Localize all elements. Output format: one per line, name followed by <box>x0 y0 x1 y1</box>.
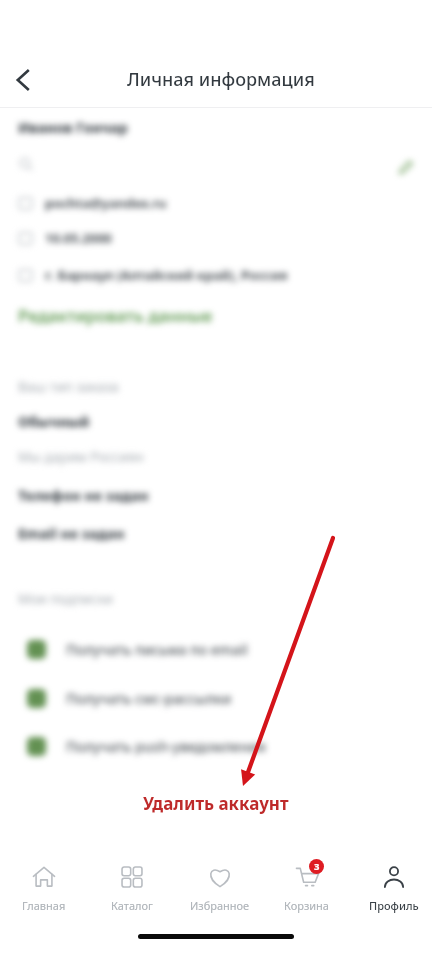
staticText: pochta@yandex.ru <box>45 194 167 212</box>
staticText: 3 <box>314 860 320 873</box>
staticText: Профиль <box>369 898 419 913</box>
staticText: Мои подписки <box>18 590 114 608</box>
staticText: Получать смс-рассылки <box>66 689 232 708</box>
staticText: Получать push-уведомления <box>66 737 266 756</box>
staticText: Обычный <box>18 412 90 431</box>
staticText: Редактировать данные <box>18 304 213 327</box>
staticText: Избранное <box>190 898 250 913</box>
staticText: Получать письма по email <box>66 640 248 659</box>
staticText: Иванов Гончар <box>18 118 128 137</box>
staticText: Главная <box>22 898 66 913</box>
staticText: Корзина <box>284 898 329 913</box>
staticText: Каталог <box>111 898 153 913</box>
button[interactable]: Back <box>4 60 44 100</box>
button[interactable]: Получать письма по email <box>27 640 248 659</box>
staticText: г. Барнаул (Алтайский край), Россия <box>45 266 288 284</box>
button[interactable]: Каталог <box>88 865 176 913</box>
staticText: Email не задан <box>18 524 125 543</box>
staticText: Ваш тип заказа <box>18 378 119 396</box>
button[interactable]: 3 <box>263 865 350 913</box>
staticText: 10.05.2000 <box>45 229 112 247</box>
button[interactable]: Избранное <box>176 865 263 913</box>
staticText: Личная информация <box>127 67 315 92</box>
button[interactable]: Главная <box>0 865 88 913</box>
staticText: Телефон не задан <box>18 486 149 505</box>
button[interactable]: Получать смс-рассылки <box>27 689 232 708</box>
button[interactable]: Профиль <box>350 865 432 913</box>
staticText: Удалить аккаунт <box>143 792 289 815</box>
button[interactable]: Удалить аккаунт <box>133 789 299 818</box>
staticText: Мы дарим Россиян <box>18 448 144 466</box>
button[interactable]: Получать push-уведомления <box>27 737 266 756</box>
